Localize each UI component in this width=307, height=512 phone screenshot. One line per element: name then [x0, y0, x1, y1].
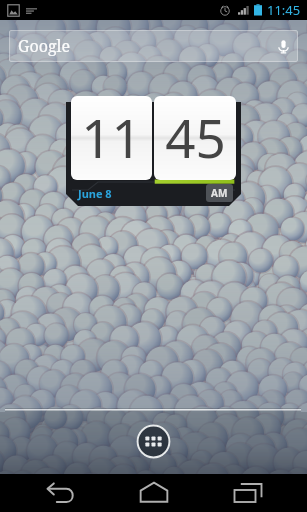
staticText: 11:45: [267, 1, 301, 19]
button[interactable]: Home: [103, 474, 205, 512]
button[interactable]: Recents: [205, 474, 307, 512]
staticText: 45: [165, 101, 226, 173]
button[interactable]: Voice search: [269, 32, 297, 60]
staticText: 11: [81, 101, 142, 173]
button[interactable]: Google: [9, 30, 298, 62]
staticText: AM: [211, 186, 228, 200]
staticText: Google: [18, 35, 71, 57]
button[interactable]: Back: [0, 474, 103, 512]
staticText: June 8: [78, 186, 112, 201]
button[interactable]: Apps: [136, 424, 171, 459]
button[interactable]: 11: [66, 96, 241, 206]
